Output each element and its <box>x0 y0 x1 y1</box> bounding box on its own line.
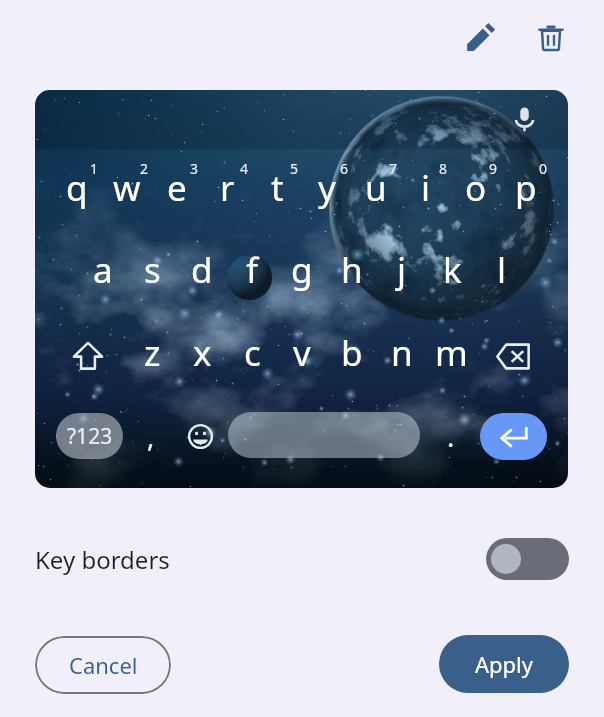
staticText: w <box>113 164 141 212</box>
button[interactable]: h <box>327 239 377 301</box>
button[interactable]: a <box>78 239 128 301</box>
staticText: 8 <box>439 159 448 178</box>
button[interactable]: l <box>477 239 527 301</box>
staticText: 6 <box>340 159 349 178</box>
button[interactable]: Edit <box>452 10 508 66</box>
button[interactable]: q <box>52 157 102 219</box>
staticText: e <box>167 164 187 212</box>
button[interactable]: ?123 <box>56 413 123 459</box>
button[interactable]: s <box>127 239 177 301</box>
staticText: c <box>244 329 261 377</box>
staticText: s <box>144 246 161 294</box>
button[interactable]: v <box>277 322 327 384</box>
button[interactable]: Delete <box>523 10 579 66</box>
button[interactable]: t <box>252 157 302 219</box>
staticText: n <box>391 329 413 377</box>
staticText: i <box>421 164 431 212</box>
staticText: g <box>291 246 313 294</box>
button[interactable]: Apply <box>439 635 569 693</box>
button[interactable]: y <box>302 157 352 219</box>
button[interactable]: k <box>427 239 477 301</box>
button[interactable]: o <box>451 157 501 219</box>
button[interactable]: Backspace <box>491 334 535 378</box>
staticText: 4 <box>240 159 249 178</box>
button[interactable]: Voice input <box>502 97 546 141</box>
button[interactable]: w <box>102 157 152 219</box>
staticText: 1 <box>90 159 99 178</box>
button[interactable]: Key borders <box>0 520 604 598</box>
staticText: 0 <box>539 159 548 178</box>
staticText: u <box>365 164 387 212</box>
button[interactable]: , <box>134 413 168 459</box>
button[interactable]: r <box>202 157 252 219</box>
staticText: 5 <box>290 159 299 178</box>
staticText: p <box>515 164 537 212</box>
staticText: ?123 <box>67 422 113 451</box>
staticText: l <box>497 246 507 294</box>
button[interactable]: m <box>426 322 476 384</box>
staticText: . <box>447 418 455 455</box>
staticText: , <box>147 418 155 455</box>
staticText: x <box>193 329 212 377</box>
button[interactable]: z <box>127 322 177 384</box>
staticText: 2 <box>140 159 149 178</box>
button[interactable]: g <box>277 239 327 301</box>
staticText: t <box>271 164 284 212</box>
staticText: Apply <box>475 649 534 679</box>
button[interactable]: p <box>501 157 551 219</box>
staticText: 7 <box>389 159 398 178</box>
button[interactable]: i <box>401 157 451 219</box>
staticText: f <box>246 246 259 294</box>
staticText: o <box>465 164 487 212</box>
staticText: a <box>93 246 113 294</box>
staticText: d <box>191 246 213 294</box>
staticText: v <box>293 329 311 377</box>
button[interactable]: Shift <box>66 334 110 378</box>
staticText: h <box>341 246 363 294</box>
button[interactable]: Emoji <box>178 414 222 458</box>
button[interactable]: n <box>377 322 427 384</box>
staticText: 3 <box>190 159 199 178</box>
button[interactable]: u <box>351 157 401 219</box>
staticText: r <box>220 164 235 212</box>
staticText: m <box>435 329 468 377</box>
button[interactable]: Cancel <box>35 636 171 694</box>
staticText: 9 <box>489 159 498 178</box>
staticText: z <box>144 329 161 377</box>
button[interactable]: e <box>152 157 202 219</box>
button[interactable]: d <box>177 239 227 301</box>
button[interactable]: j <box>377 239 427 301</box>
button[interactable]: b <box>327 322 377 384</box>
staticText: q <box>66 164 88 212</box>
staticText: j <box>397 246 407 294</box>
staticText: Key borders <box>35 543 170 576</box>
button[interactable]: Space <box>228 412 420 458</box>
staticText: Cancel <box>69 650 138 680</box>
button[interactable]: . <box>434 413 468 459</box>
staticText: y <box>318 164 336 212</box>
button[interactable]: x <box>177 322 227 384</box>
button[interactable]: Enter <box>480 413 547 460</box>
button[interactable]: c <box>227 322 277 384</box>
button[interactable]: f <box>227 239 277 301</box>
staticText: k <box>443 246 462 294</box>
staticText: b <box>341 329 363 377</box>
